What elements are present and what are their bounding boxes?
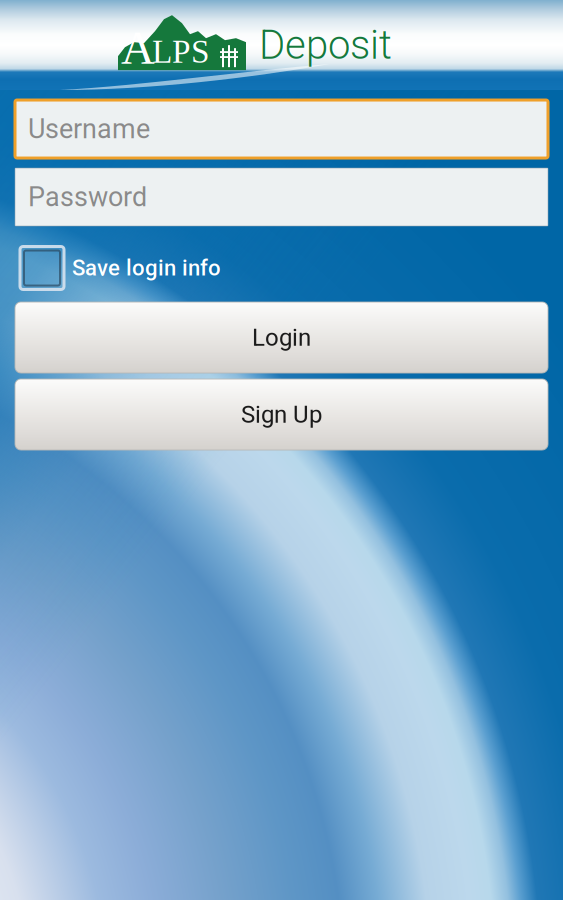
button[interactable]: Username [15,100,548,158]
staticText: Username [28,113,150,145]
button[interactable]: Sign Up [15,379,548,450]
button[interactable]: Password [15,168,548,226]
staticText: Save login info [72,255,221,281]
staticText: A [121,22,155,74]
staticText: LPS [152,33,210,70]
staticText: Login [252,323,311,351]
button[interactable]: Login [15,302,548,373]
staticText: Password [28,181,147,213]
staticText: Deposit [259,22,392,68]
staticText: Sign Up [241,400,322,428]
button[interactable]: Save login info [0,246,563,290]
